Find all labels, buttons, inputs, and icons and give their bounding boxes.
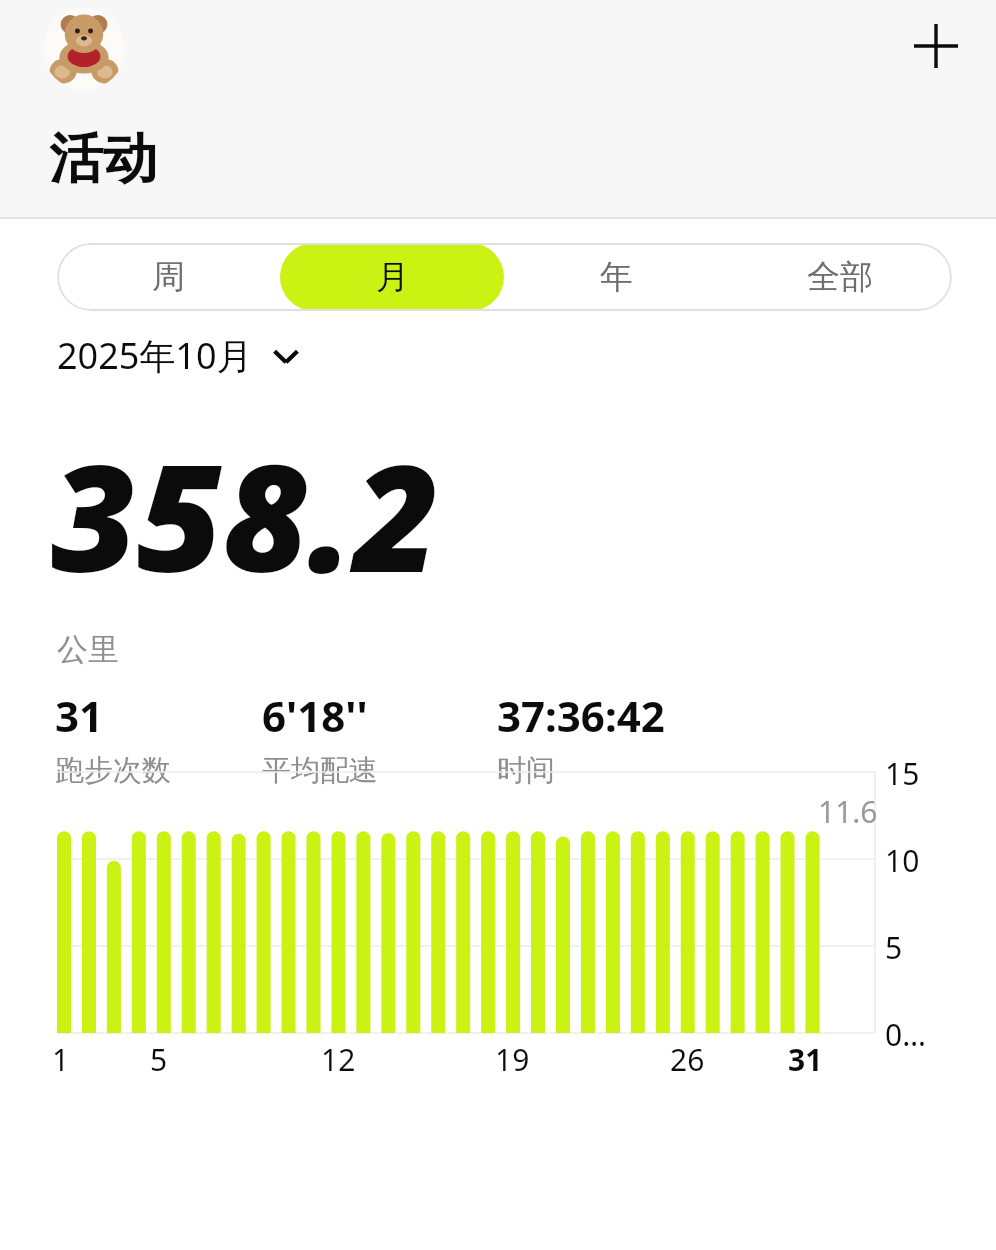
staticText: 活动	[49, 125, 157, 193]
staticText: 5	[885, 927, 903, 968]
button[interactable]: Profile	[43, 8, 125, 90]
staticText: 15	[885, 753, 920, 794]
staticText: 31	[55, 687, 104, 744]
staticText: 11.6	[818, 791, 878, 832]
staticText: 358.2	[51, 414, 440, 616]
staticText: 10	[885, 840, 920, 881]
staticText: 1	[52, 1039, 70, 1080]
staticText: 26	[670, 1039, 705, 1080]
button[interactable]: 全部	[728, 243, 952, 311]
staticText: 5	[150, 1039, 168, 1080]
staticText: 时间	[497, 752, 555, 789]
staticText: 37:36:42	[497, 687, 665, 744]
button[interactable]: Add	[892, 2, 980, 90]
staticText: 年	[600, 256, 633, 298]
staticText: 12	[321, 1039, 356, 1080]
staticText: 19	[495, 1039, 530, 1080]
button[interactable]: 月	[280, 243, 504, 311]
button[interactable]: 31	[55, 687, 171, 789]
button[interactable]: 周	[57, 243, 280, 311]
staticText: 月	[376, 256, 409, 298]
staticText: 平均配速	[262, 752, 378, 789]
staticText: 公里	[57, 630, 119, 669]
button[interactable]: 2025年10月	[57, 331, 301, 380]
staticText: 31	[788, 1039, 823, 1080]
staticText: 2025年10月	[57, 331, 253, 380]
staticText: 跑步次数	[55, 752, 171, 789]
staticText: 0…	[885, 1014, 926, 1055]
staticText: 全部	[807, 256, 873, 298]
button[interactable]: 年	[504, 243, 728, 311]
button[interactable]: 37:36:42	[497, 687, 665, 789]
staticText: 周	[152, 256, 185, 298]
button[interactable]: 6'18''	[262, 687, 378, 789]
staticText: 6'18''	[262, 687, 368, 744]
